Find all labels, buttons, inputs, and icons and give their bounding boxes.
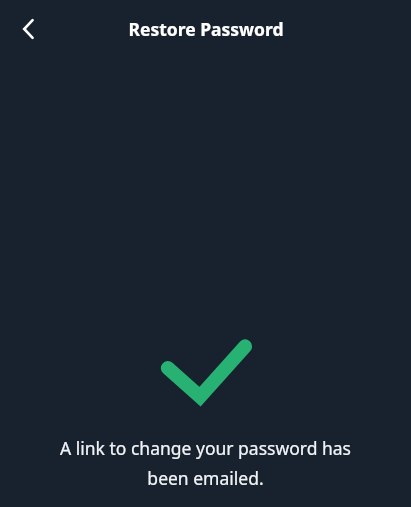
staticText: A link to change your password has been …	[40, 436, 371, 490]
button[interactable]: Back	[6, 6, 52, 52]
staticText: Restore Password	[128, 17, 284, 41]
